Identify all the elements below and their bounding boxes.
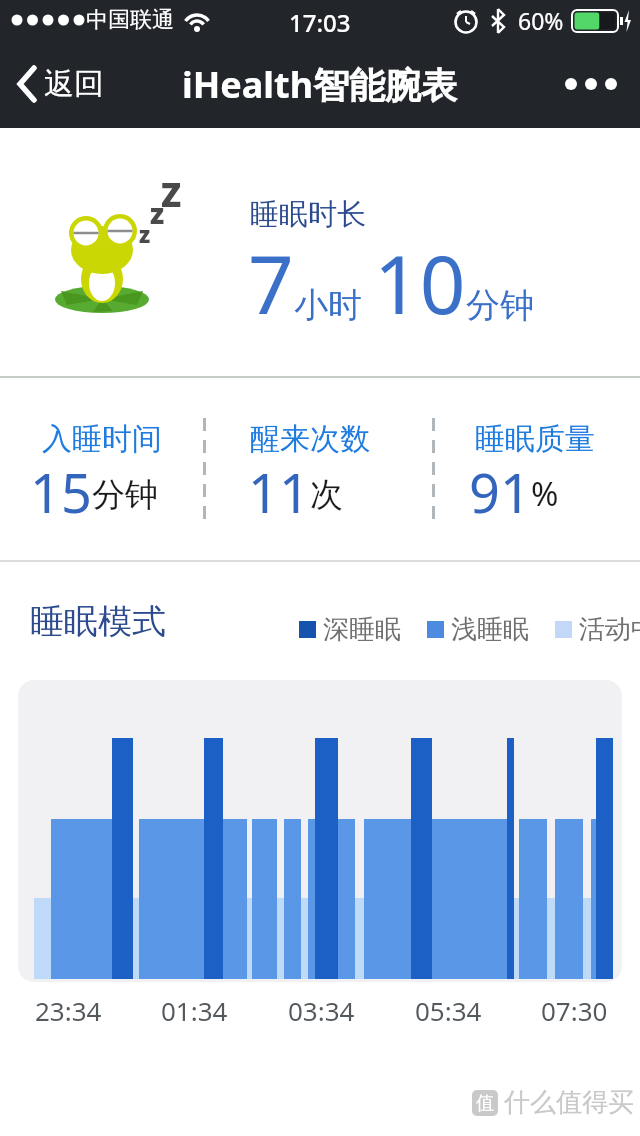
button[interactable] [564,77,618,91]
staticText: Z [161,172,182,217]
staticText: 活动中 [579,613,640,646]
staticText: 10 [374,228,466,334]
staticText: 15 [30,455,92,521]
button[interactable] [18,680,622,982]
staticText: 03:34 [288,993,355,1028]
staticText: z [150,194,165,232]
staticText: 睡眠模式 [30,600,166,643]
staticText: 分钟 [466,284,534,327]
staticText: 小时 [294,284,362,327]
staticText: 值 [476,1092,494,1115]
staticText: 01:34 [161,993,228,1028]
staticText: 7 [248,228,294,334]
staticText: 次 [310,474,343,516]
staticText: 05:34 [415,993,482,1028]
staticText: 睡眠时长 [250,196,366,233]
staticText: 91 [469,455,531,521]
staticText: 07:30 [541,993,608,1028]
staticText: 醒来次数 [250,420,370,458]
staticText: 返回 [44,65,104,103]
staticText: 睡眠质量 [475,420,595,458]
staticText: 11 [248,455,310,521]
staticText: 深睡眠 [323,613,401,646]
staticText: 浅睡眠 [451,613,529,646]
staticText: 60% [518,5,564,36]
button[interactable]: 返回 [16,65,104,103]
staticText: 什么值得买 [504,1086,634,1119]
staticText: 中国联通 [86,6,174,34]
staticText: % [531,471,559,516]
staticText: z [139,219,151,249]
staticText: 23:34 [35,993,102,1028]
staticText: 入睡时间 [42,420,162,458]
staticText: iHealth智能腕表 [182,60,458,109]
staticText: 17:03 [289,6,351,39]
staticText: 分钟 [92,474,158,516]
